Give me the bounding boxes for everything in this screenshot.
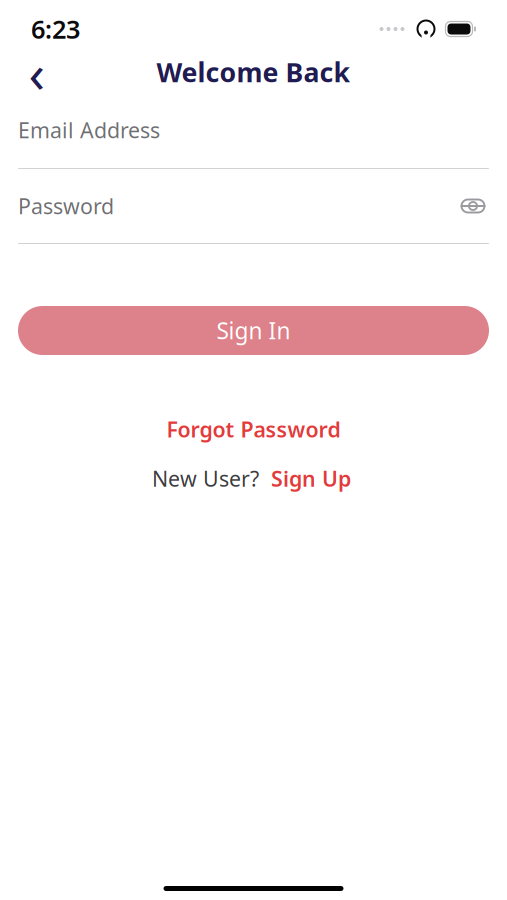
- button[interactable]: Forgot Password: [154, 410, 352, 448]
- staticText: ‹: [28, 37, 45, 107]
- staticText: Welcome Back: [156, 54, 350, 90]
- staticText: Forgot Password: [166, 415, 340, 443]
- button[interactable]: Back: [18, 52, 56, 92]
- staticText: New User?: [152, 464, 259, 493]
- button[interactable]: Sign Up: [267, 460, 355, 497]
- staticText: Sign Up: [271, 464, 351, 493]
- button[interactable]: Show password: [457, 193, 489, 219]
- staticText: Email Address: [18, 116, 160, 144]
- staticText: Password: [18, 192, 114, 220]
- staticText: Sign In: [216, 315, 290, 345]
- staticText: 6:23: [31, 12, 80, 46]
- button[interactable]: Sign In: [18, 306, 489, 355]
